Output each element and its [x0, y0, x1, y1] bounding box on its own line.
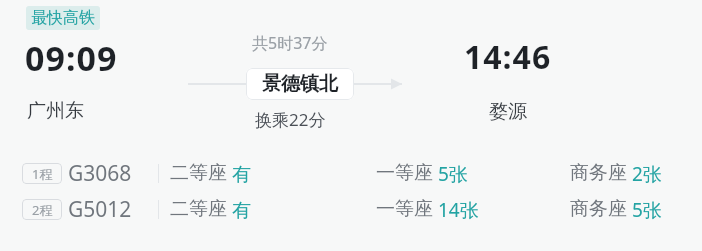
- staticText: 共5时37分: [252, 32, 328, 54]
- staticText: 换乘22分: [255, 108, 326, 131]
- staticText: 景德镇北: [262, 72, 338, 96]
- staticText: 09:09: [25, 35, 118, 81]
- staticText: 一等座: [376, 161, 433, 185]
- staticText: 二等座: [170, 197, 227, 221]
- staticText: 有: [227, 161, 251, 187]
- staticText: 广州东: [27, 99, 84, 123]
- staticText: 最快高铁: [31, 8, 95, 28]
- button[interactable]: [0, 156, 702, 190]
- staticText: 14张: [433, 197, 479, 223]
- staticText: 有: [227, 197, 251, 223]
- staticText: 1程: [32, 165, 53, 183]
- staticText: 2张: [627, 161, 662, 187]
- button[interactable]: 最快高铁: [26, 6, 100, 30]
- staticText: 2程: [32, 201, 53, 219]
- button[interactable]: [0, 192, 702, 226]
- staticText: 婺源: [489, 100, 527, 124]
- staticText: 5张: [433, 161, 468, 187]
- staticText: 5张: [627, 197, 662, 223]
- staticText: G3068: [68, 159, 132, 188]
- staticText: 商务座: [570, 161, 627, 185]
- staticText: 二等座: [170, 161, 227, 185]
- button[interactable]: 景德镇北: [246, 68, 354, 100]
- staticText: 商务座: [570, 197, 627, 221]
- staticText: G5012: [68, 195, 132, 224]
- staticText: 14:46: [464, 35, 552, 79]
- staticText: 一等座: [376, 197, 433, 221]
